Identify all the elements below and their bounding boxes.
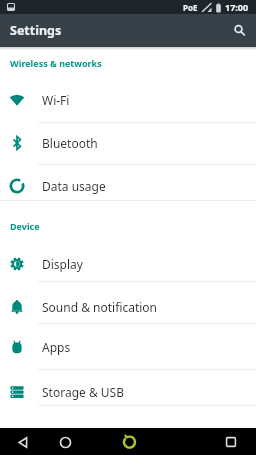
staticText: Settings xyxy=(10,22,62,39)
staticText: Sound & notification xyxy=(42,299,158,315)
button[interactable]: Storage & USB xyxy=(0,371,256,413)
button[interactable]: Bluetooth xyxy=(0,122,256,164)
button[interactable]: Apps xyxy=(0,326,256,368)
staticText: Wi-Fi xyxy=(42,92,70,108)
button[interactable] xyxy=(228,19,252,43)
staticText: Device xyxy=(10,220,40,232)
staticText: Storage & USB xyxy=(42,384,124,400)
staticText: Display xyxy=(42,256,83,272)
button[interactable]: Data usage xyxy=(0,165,256,207)
staticText: PoE xyxy=(183,2,198,13)
button[interactable]: Display xyxy=(0,243,256,285)
button[interactable] xyxy=(118,430,141,453)
staticText: Data usage xyxy=(42,178,106,194)
staticText: 17:00 xyxy=(225,1,249,13)
button[interactable] xyxy=(11,431,33,453)
button[interactable] xyxy=(54,431,77,454)
staticText: Apps xyxy=(42,339,71,355)
button[interactable]: Wi-Fi xyxy=(0,79,256,121)
staticText: Bluetooth xyxy=(42,135,98,151)
button[interactable]: Sound & notification xyxy=(0,286,256,328)
staticText: Wireless & networks xyxy=(10,57,102,69)
button[interactable] xyxy=(220,431,242,453)
